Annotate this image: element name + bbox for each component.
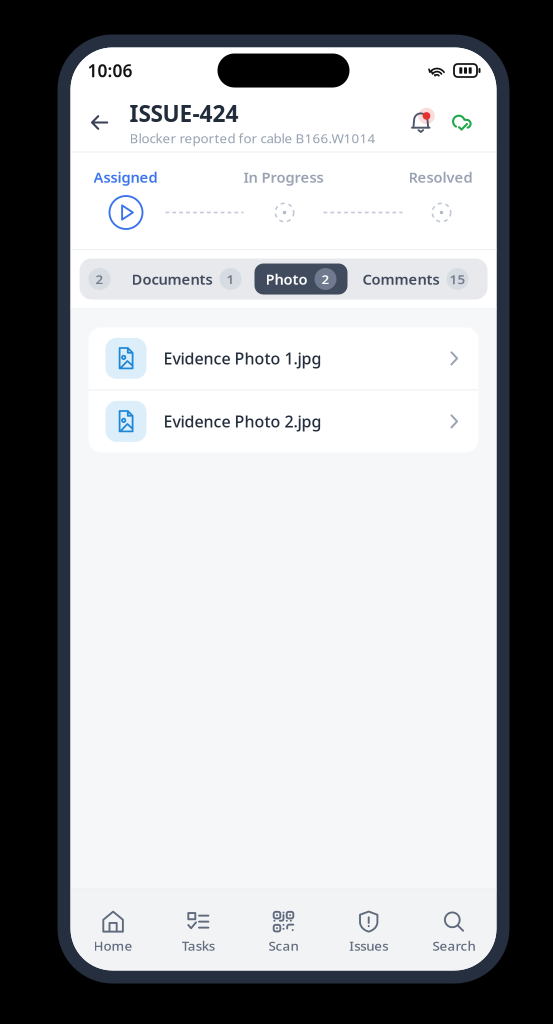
staticText: 10:06 bbox=[87, 59, 132, 82]
staticText: Assigned bbox=[93, 167, 157, 187]
staticText: Resolved bbox=[408, 167, 472, 187]
staticText: Scan bbox=[268, 937, 298, 954]
staticText: Tasks bbox=[182, 937, 215, 954]
button[interactable]: Back bbox=[80, 99, 118, 145]
staticText: Photo bbox=[265, 269, 307, 289]
button[interactable]: Issues bbox=[326, 889, 411, 970]
staticText: Evidence Photo 1.jpg bbox=[163, 348, 321, 369]
staticText: 15 bbox=[449, 270, 465, 288]
staticText: ISSUE-424 bbox=[129, 98, 238, 128]
staticText: 2 bbox=[321, 270, 329, 288]
staticText: In Progress bbox=[243, 167, 323, 187]
button[interactable]: Evidence Photo 1.jpg bbox=[88, 327, 478, 389]
staticText: Documents bbox=[131, 269, 212, 289]
button[interactable]: Scan bbox=[241, 889, 326, 970]
button[interactable]: Documents bbox=[120, 263, 252, 294]
button[interactable]: Notifications bbox=[401, 100, 441, 144]
button[interactable]: Photo bbox=[254, 263, 347, 294]
staticText: Evidence Photo 2.jpg bbox=[163, 411, 321, 432]
staticText: 2 bbox=[95, 270, 103, 288]
button[interactable]: Sync status bbox=[442, 100, 482, 144]
staticText: 1 bbox=[226, 270, 234, 288]
button[interactable]: Evidence Photo 2.jpg bbox=[88, 390, 478, 452]
staticText: Issues bbox=[349, 937, 388, 954]
staticText: Home bbox=[94, 937, 133, 954]
staticText: Comments bbox=[362, 269, 439, 289]
button[interactable]: Search bbox=[411, 889, 496, 970]
button[interactable]: Comments bbox=[351, 263, 479, 294]
staticText: Search bbox=[432, 937, 475, 954]
button[interactable]: Home bbox=[70, 889, 156, 970]
button[interactable]: Tasks bbox=[156, 889, 241, 970]
staticText: Blocker reported for cable B166.W1014 bbox=[129, 129, 375, 147]
